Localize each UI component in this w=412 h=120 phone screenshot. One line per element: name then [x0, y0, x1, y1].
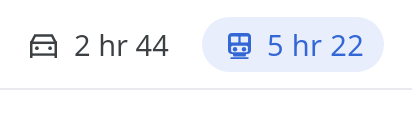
staticText: 5 hr 22: [267, 25, 365, 64]
staticText: 2 hr 44: [74, 25, 169, 64]
button[interactable]: Driving: [13, 17, 184, 72]
other: Driving: [30, 34, 57, 58]
other: Transit: [228, 33, 251, 59]
button[interactable]: Transit: [202, 17, 384, 72]
